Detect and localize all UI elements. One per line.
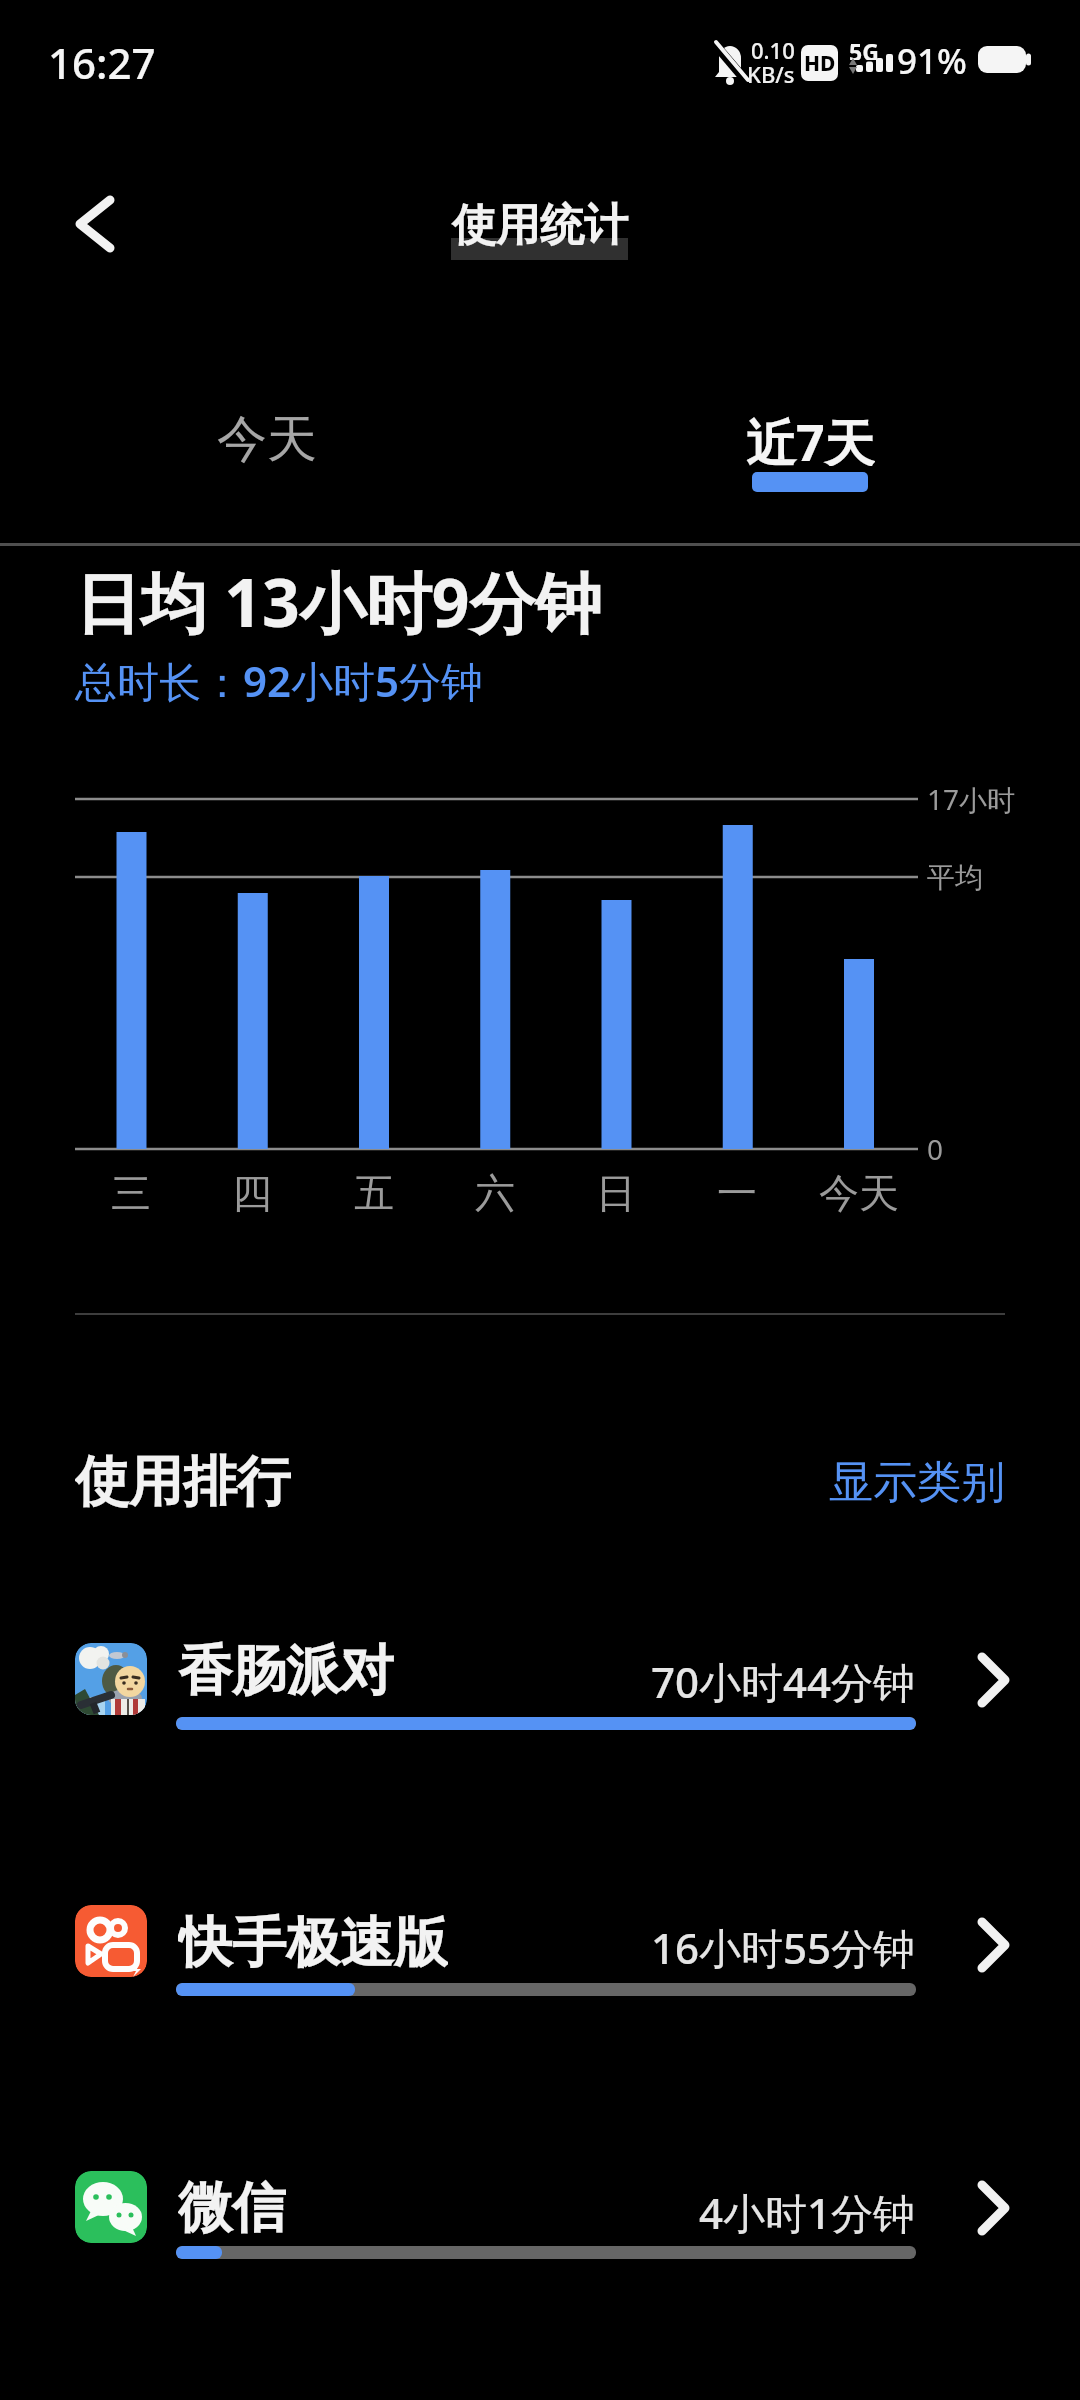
- button[interactable]: [40, 2146, 1040, 2276]
- staticText: HD: [804, 49, 836, 78]
- staticText: 快手极速版: [178, 1909, 448, 1973]
- staticText: 16小时55分钟: [651, 1919, 916, 1969]
- staticText: 70小时44分钟: [651, 1653, 916, 1703]
- staticText: 5G: [849, 36, 879, 60]
- button[interactable]: 显示类别: [705, 1455, 1005, 1505]
- button[interactable]: [40, 1880, 1040, 2010]
- staticText: 香肠派对: [178, 1637, 394, 1701]
- staticText: 0.10: [751, 35, 795, 59]
- staticText: 4小时1分钟: [699, 2184, 916, 2234]
- staticText: 日均 13小时9分钟: [75, 556, 602, 646]
- staticText: 0: [927, 1130, 944, 1168]
- staticText: 16:27: [48, 34, 156, 86]
- staticText: 17小时: [927, 780, 1016, 818]
- staticText: 近7天: [746, 408, 875, 466]
- staticText: 四: [232, 1168, 272, 1216]
- staticText: 五: [354, 1168, 394, 1216]
- staticText: 今天: [217, 408, 317, 466]
- button[interactable]: 今天: [167, 408, 367, 466]
- staticText: 今天: [819, 1168, 899, 1216]
- staticText: 91%: [897, 37, 967, 83]
- button[interactable]: 近7天: [710, 408, 910, 466]
- staticText: 三: [111, 1168, 151, 1216]
- staticText: 使用排行: [75, 1448, 291, 1508]
- button[interactable]: [40, 1618, 1040, 1748]
- staticText: 一: [717, 1168, 757, 1216]
- staticText: 显示类别: [829, 1455, 1005, 1505]
- staticText: 六: [475, 1168, 515, 1216]
- staticText: 使用统计: [452, 198, 628, 253]
- staticText: 日: [596, 1168, 636, 1216]
- staticText: 平均: [927, 860, 983, 895]
- staticText: 总时长：92小时5分钟: [75, 652, 484, 709]
- button[interactable]: [66, 190, 126, 258]
- staticText: KB/s: [747, 59, 795, 83]
- staticText: 微信: [178, 2174, 286, 2238]
